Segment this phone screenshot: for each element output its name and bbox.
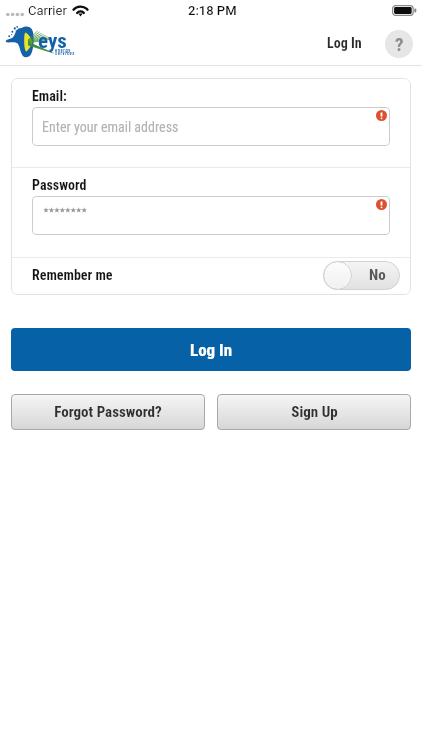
staticText: services [55,51,75,56]
button[interactable]: Log In [316,22,372,65]
button[interactable]: Help [385,30,413,58]
staticText: Password [32,177,87,193]
staticText: Remember me [32,267,113,283]
staticText: ? [395,33,404,55]
staticText: Sign Up [291,403,338,421]
staticText: eys [38,29,67,54]
button[interactable]: Remember me [11,258,411,295]
staticText: Carrier [28,3,67,18]
button[interactable]: Sign Up [217,394,411,430]
staticText: Log In [327,35,362,51]
button[interactable]: Log In [11,328,411,371]
staticText: No [369,266,386,284]
button[interactable]: Remember me toggle [323,261,400,290]
staticText: Forgot Password? [54,403,162,421]
button[interactable]: Enter your email address [32,107,390,146]
staticText: 2:18 PM [188,3,237,18]
staticText: Enter your email address [42,119,179,135]
staticText: Email: [32,88,67,104]
button[interactable] [32,196,390,235]
staticText: energy [55,48,71,53]
staticText: Log In [190,340,233,360]
button[interactable]: Forgot Password? [11,394,205,430]
